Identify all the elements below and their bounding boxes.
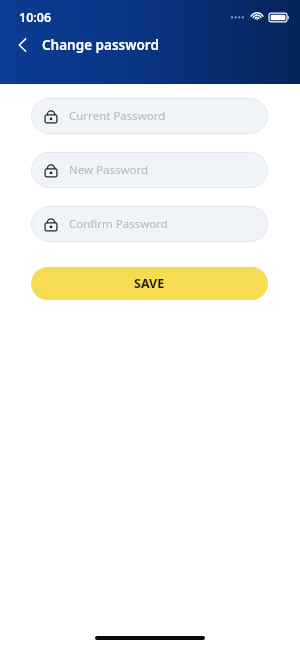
button[interactable]: Current Password — [31, 98, 268, 134]
staticText: Confirm Password — [69, 216, 168, 232]
button[interactable]: SAVE — [31, 267, 268, 300]
staticText: Current Password — [69, 108, 166, 124]
staticText: SAVE — [134, 275, 165, 292]
staticText: New Password — [69, 162, 149, 178]
button[interactable]: New Password — [31, 152, 268, 188]
staticText: Change password — [42, 36, 159, 54]
staticText: 10:06 — [19, 9, 52, 26]
button[interactable]: Confirm Password — [31, 206, 268, 242]
button[interactable]: Back — [8, 30, 38, 60]
